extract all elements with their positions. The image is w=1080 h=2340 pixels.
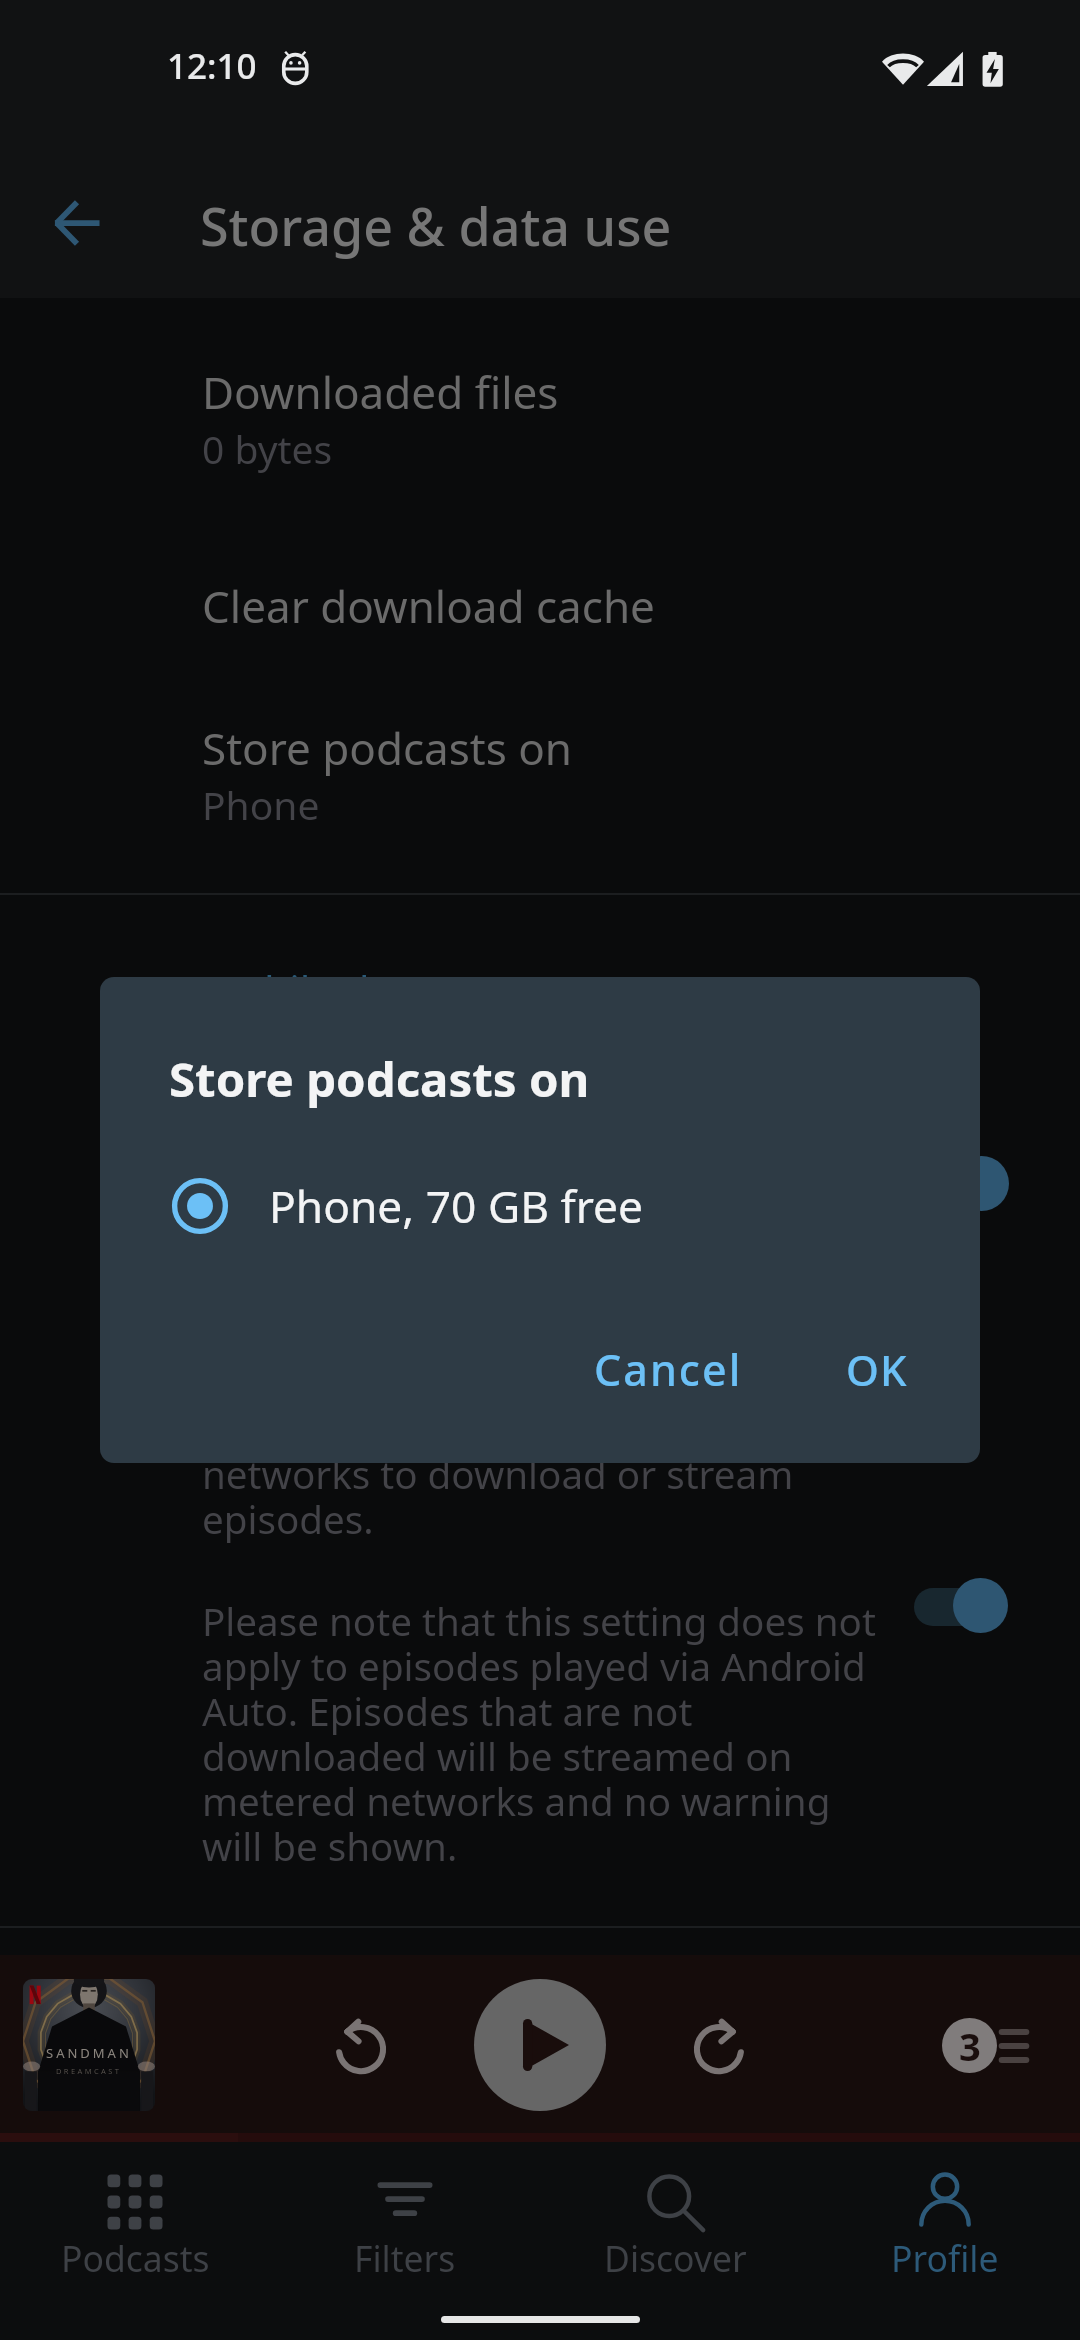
staticText: SANDMAN — [46, 2044, 132, 2062]
staticText: Downloaded files — [202, 362, 559, 422]
staticText: Phone — [202, 778, 320, 831]
staticText: Please note that this setting does not a… — [202, 1595, 876, 1872]
button[interactable]: Skip forward 30 seconds — [656, 1981, 782, 2107]
staticText: Clear download cache — [202, 576, 655, 636]
button[interactable]: Skip back 10 seconds — [298, 1981, 424, 2107]
button[interactable]: Back — [29, 175, 125, 271]
staticText: 0 bytes — [202, 422, 333, 475]
button[interactable]: Filters — [270, 2142, 540, 2302]
staticText: 12:10 — [167, 42, 257, 90]
button[interactable]: Toggle — [890, 1546, 1035, 1666]
button[interactable]: Cancel — [566, 1324, 771, 1415]
staticText: Profile — [891, 2234, 999, 2282]
staticText: Storage & data use — [200, 190, 672, 261]
staticText: Store podcasts on — [202, 718, 573, 778]
button[interactable]: Warn before using data toggle — [890, 1123, 1035, 1243]
button[interactable]: Discover — [540, 2142, 810, 2302]
button[interactable]: Downloaded files — [0, 322, 1080, 492]
button[interactable]: Profile — [810, 2142, 1080, 2302]
staticText: Cancel — [594, 1340, 743, 1399]
button[interactable]: Store podcasts on — [0, 678, 1080, 858]
staticText: Shows a warning when using mobile networ… — [202, 1403, 865, 1545]
staticText: Store podcasts on — [169, 1046, 590, 1111]
staticText: Warn before using data — [202, 1320, 689, 1380]
staticText: Discover — [604, 2234, 747, 2282]
button[interactable]: Podcasts — [0, 2142, 270, 2302]
staticText: 3 — [959, 2020, 981, 2072]
staticText: OK — [846, 1341, 908, 1398]
staticText: DREAMCAST — [56, 2066, 122, 2076]
button[interactable]: Up next queue, 3 episodes — [920, 1981, 1050, 2107]
staticText: Podcasts — [61, 2234, 210, 2282]
button[interactable]: Clear download cache — [0, 536, 1080, 666]
button[interactable]: OK — [818, 1325, 936, 1414]
staticText: Filters — [354, 2234, 456, 2282]
staticText: Mobile data — [202, 963, 431, 1019]
button[interactable]: Phone, 70 GB free — [100, 1157, 980, 1255]
button[interactable]: Play — [474, 1979, 606, 2111]
staticText: Phone, 70 GB free — [269, 1176, 644, 1236]
